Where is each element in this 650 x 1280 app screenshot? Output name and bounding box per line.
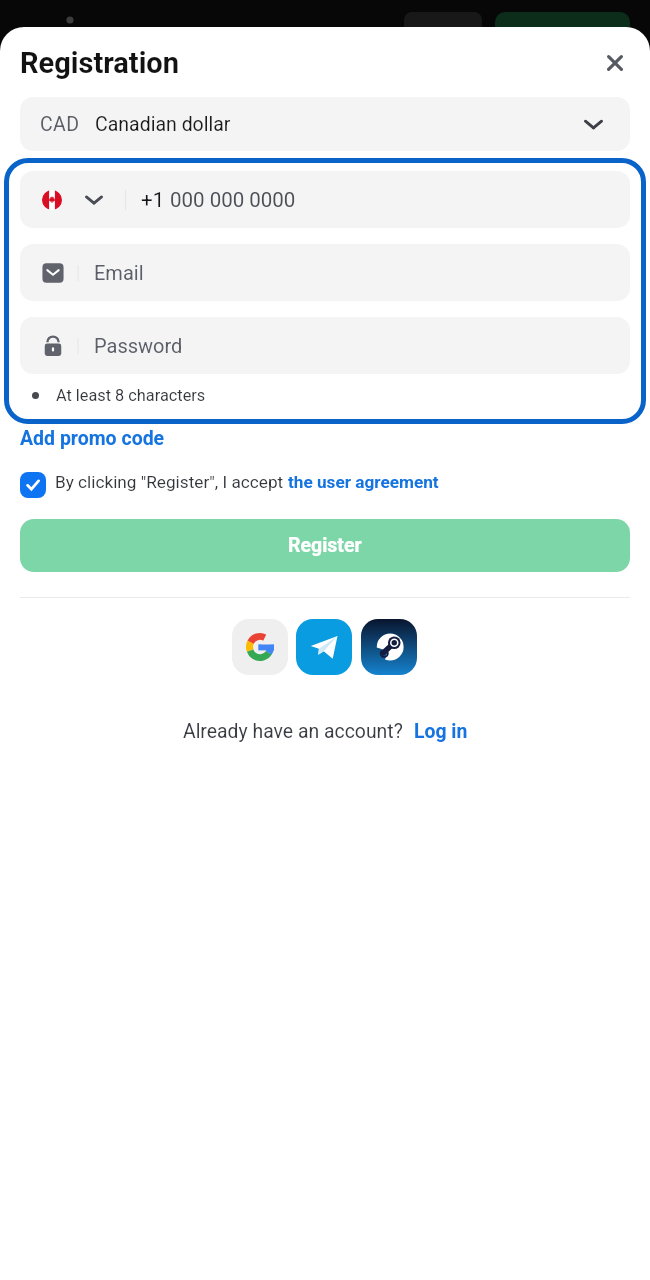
- button[interactable]: Email: [20, 244, 630, 301]
- button[interactable]: Sign in with Telegram: [296, 619, 352, 675]
- staticText: Email: [94, 261, 144, 284]
- button[interactable]: +1: [20, 171, 630, 228]
- button[interactable]: Already have an account?: [0, 720, 650, 743]
- staticText: +1: [141, 188, 165, 212]
- button[interactable]: Register: [20, 519, 630, 572]
- staticText: At least 8 characters: [56, 386, 206, 405]
- staticText: Canadian dollar: [95, 113, 231, 136]
- button[interactable]: By clicking "Register", I accept: [20, 472, 439, 498]
- staticText: the user agreement: [288, 472, 439, 492]
- staticText: 000 000 0000: [170, 188, 296, 212]
- staticText: Registration: [20, 46, 179, 80]
- staticText: By clicking "Register", I accept: [55, 472, 288, 492]
- button[interactable]: CAD: [20, 97, 630, 151]
- button[interactable]: Add promo code: [20, 427, 165, 450]
- staticText: Register: [288, 534, 362, 557]
- button[interactable]: Close: [595, 43, 635, 83]
- staticText: Password: [94, 334, 183, 357]
- staticText: Log in: [414, 720, 468, 743]
- button[interactable]: Sign in with Steam: [361, 619, 417, 675]
- button[interactable]: Password: [20, 317, 630, 374]
- staticText: Add promo code: [20, 427, 165, 450]
- staticText: CAD: [40, 113, 80, 136]
- button[interactable]: Sign in with Google: [232, 619, 288, 675]
- staticText: Already have an account?: [183, 720, 403, 743]
